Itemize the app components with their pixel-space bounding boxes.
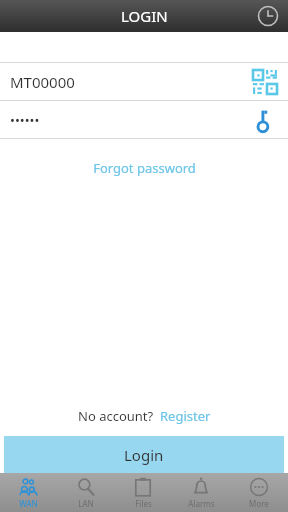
staticText: WAN — [19, 498, 38, 509]
button[interactable]: LAN — [57, 473, 114, 512]
staticText: Forgot password — [93, 159, 196, 177]
staticText: Alarms — [188, 498, 215, 509]
button[interactable]: Scan QR code — [250, 67, 280, 97]
button[interactable]: Register — [160, 407, 211, 425]
button[interactable]: •••••• — [0, 101, 288, 138]
staticText: MT00000 — [10, 72, 75, 92]
staticText: •••••• — [10, 111, 40, 129]
button[interactable]: Files — [114, 473, 172, 512]
staticText: Files — [135, 498, 152, 509]
staticText: LAN — [78, 498, 94, 509]
button[interactable]: WAN — [0, 473, 57, 512]
staticText: Register — [160, 407, 211, 425]
staticText: More — [249, 498, 269, 509]
staticText: Login — [124, 445, 164, 465]
button[interactable]: Clock — [254, 2, 282, 30]
button[interactable]: Forgot password — [0, 153, 288, 183]
button[interactable]: Show password — [250, 105, 280, 135]
staticText: LOGIN — [121, 6, 168, 26]
button[interactable]: Login — [4, 436, 284, 473]
button[interactable]: More — [230, 473, 288, 512]
button[interactable]: Alarms — [172, 473, 230, 512]
staticText: No account? — [78, 407, 154, 425]
button[interactable]: MT00000 — [0, 63, 288, 100]
